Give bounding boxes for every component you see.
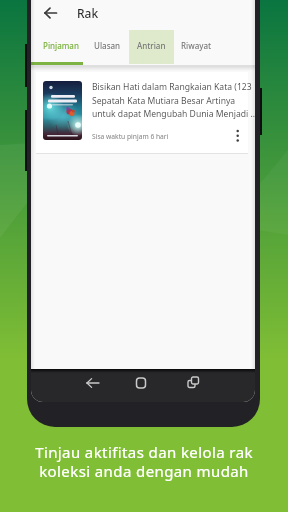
button[interactable] <box>182 372 204 394</box>
button[interactable]: Antrian <box>137 28 166 62</box>
staticText: Tinjau aktifitas dan kelola rak koleksi … <box>35 442 253 481</box>
button[interactable] <box>129 30 174 64</box>
button[interactable]: Riwayat <box>181 28 212 62</box>
staticText: Antrian <box>137 40 166 51</box>
staticText: Pinjaman <box>43 40 79 51</box>
staticText: Bisikan Hati dalam Rangkaian Kata (123 S… <box>92 81 255 119</box>
staticText: Ulasan <box>94 40 121 51</box>
staticText: Rak <box>77 5 99 21</box>
staticText: Sisa waktu pinjam 6 hari <box>92 132 169 141</box>
button[interactable] <box>230 124 246 146</box>
button[interactable]: Pinjaman <box>43 28 79 62</box>
staticText: Riwayat <box>181 40 212 51</box>
button[interactable]: Bisikan Hati dalam Rangkaian Kata (123 S… <box>36 72 248 153</box>
button[interactable] <box>82 372 104 394</box>
button[interactable]: Ulasan <box>94 28 121 62</box>
button[interactable] <box>130 372 152 394</box>
button[interactable] <box>39 2 61 24</box>
